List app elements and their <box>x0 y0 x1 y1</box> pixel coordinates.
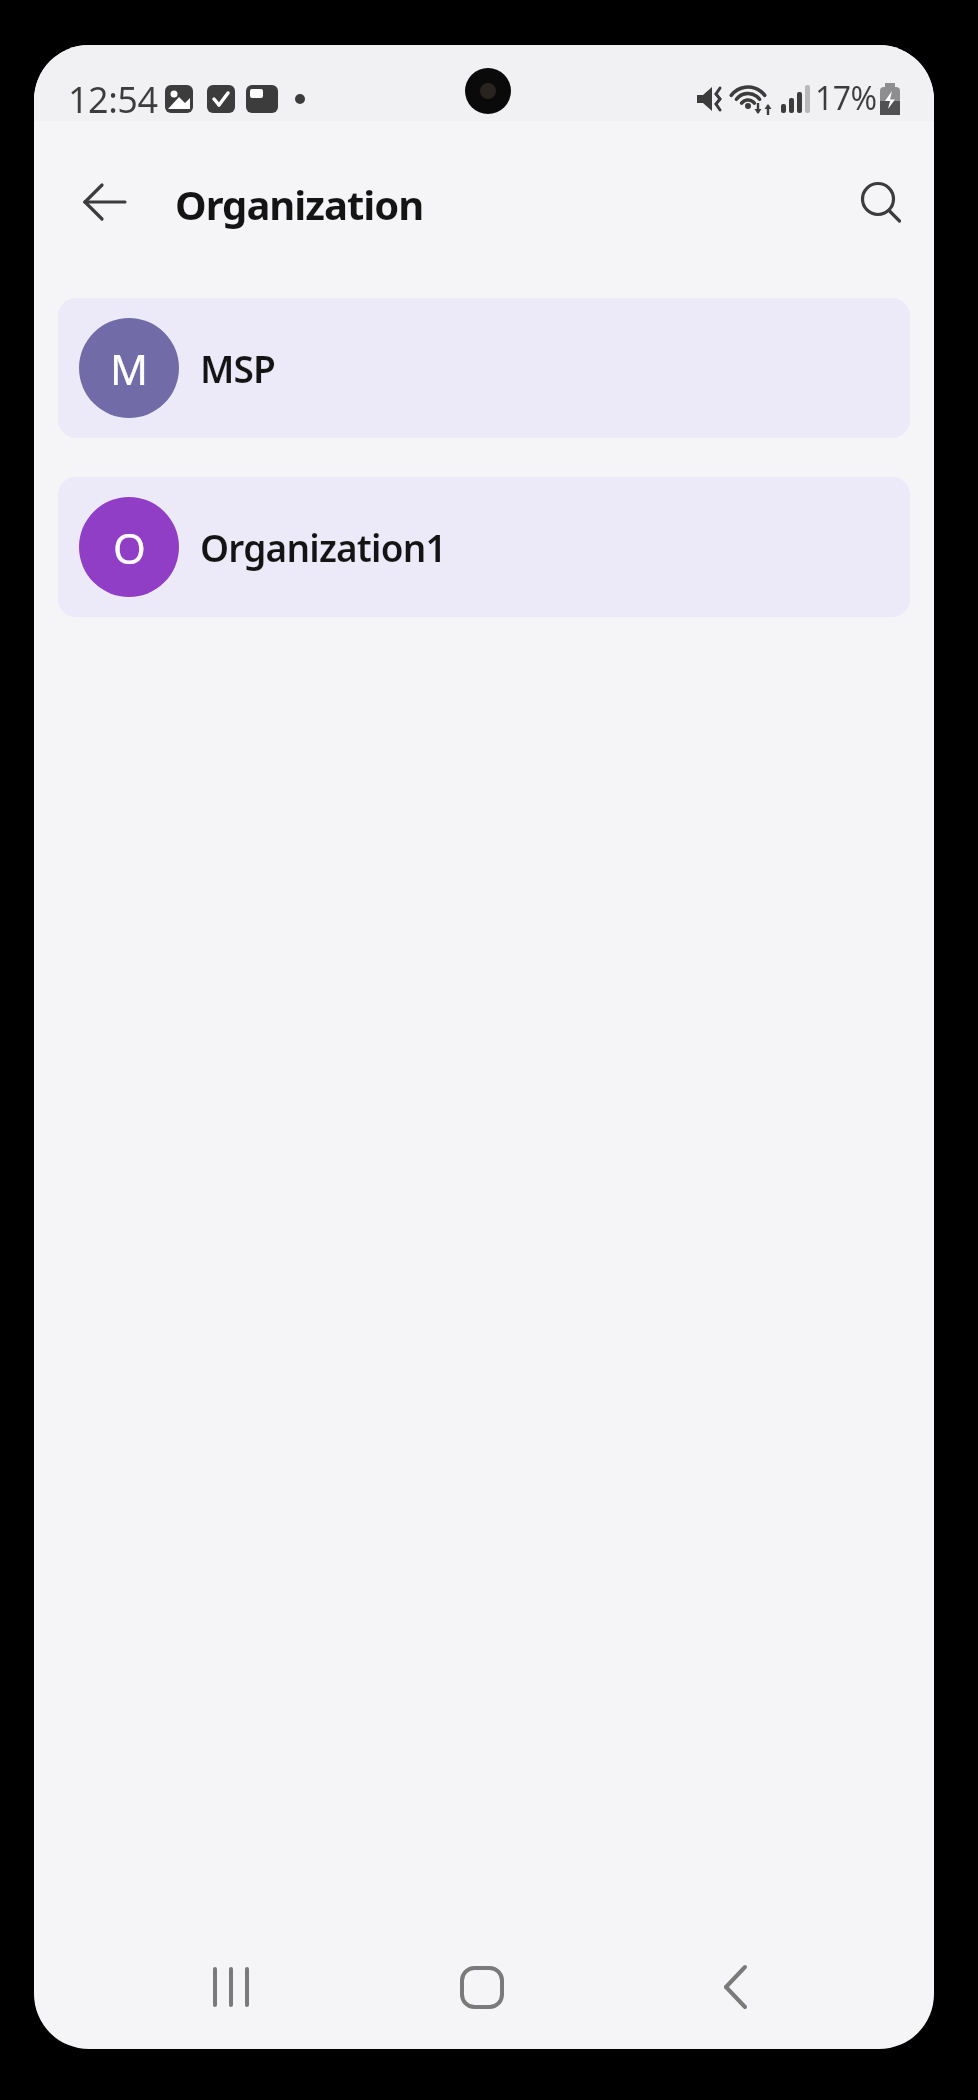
staticText: O <box>113 519 146 576</box>
button[interactable] <box>65 162 145 242</box>
button[interactable] <box>686 1937 786 2037</box>
button[interactable]: M <box>58 298 910 438</box>
staticText: Organization <box>175 177 424 231</box>
button[interactable]: O <box>58 477 910 617</box>
staticText: Organization1 <box>200 522 446 572</box>
staticText: 17% <box>815 76 877 120</box>
staticText: MSP <box>200 343 276 393</box>
staticText: M <box>110 340 149 397</box>
staticText: 12:54 <box>68 75 158 124</box>
button[interactable] <box>432 1937 532 2037</box>
button[interactable] <box>181 1937 281 2037</box>
button[interactable] <box>840 162 920 242</box>
